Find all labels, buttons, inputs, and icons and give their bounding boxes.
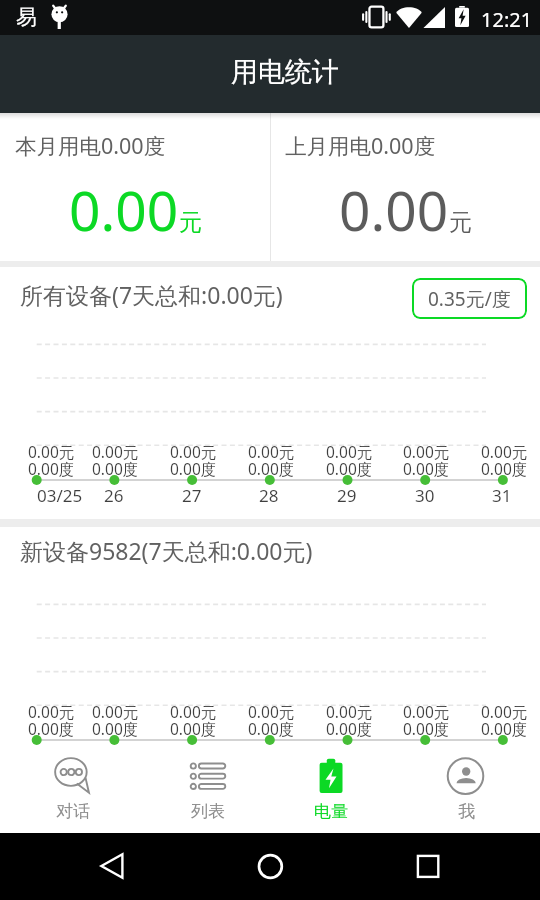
staticText: 29 — [337, 484, 357, 507]
staticText: 29 — [337, 744, 357, 767]
button[interactable]: Home — [246, 841, 294, 889]
button[interactable]: 电量 — [294, 745, 368, 833]
button[interactable]: 上月用电0.00度 — [270, 113, 540, 261]
staticText: 0.00元 0.00度 — [28, 441, 75, 480]
staticText: 31 — [492, 744, 512, 767]
staticText: 0.00 — [69, 172, 179, 247]
staticText: 易 — [16, 4, 37, 30]
staticText: 28 — [259, 484, 279, 507]
staticText: 31 — [492, 484, 512, 507]
staticText: 0.00元 0.00度 — [92, 441, 139, 480]
button[interactable]: Recents — [404, 841, 452, 889]
button[interactable]: Back — [88, 841, 136, 889]
staticText: 26 — [104, 484, 124, 507]
staticText: 0.00元 0.00度 — [326, 441, 373, 480]
staticText: 本月用电0.00度 — [15, 131, 166, 160]
staticText: 0.00元 0.00度 — [248, 701, 295, 740]
button[interactable]: 对话 — [36, 745, 110, 833]
staticText: 26 — [104, 744, 124, 767]
staticText: 0.00元 0.00度 — [326, 701, 373, 740]
staticText: 0.00元 0.00度 — [170, 441, 217, 480]
staticText: 0.00元 0.00度 — [92, 701, 139, 740]
staticText: 0.00元 0.00度 — [403, 441, 450, 480]
staticText: 上月用电0.00度 — [285, 131, 436, 160]
staticText: 27 — [182, 484, 202, 507]
staticText: 我 — [458, 801, 475, 822]
staticText: 0.00元 0.00度 — [248, 441, 295, 480]
staticText: 用电统计 — [231, 55, 339, 89]
staticText: 0.00元 0.00度 — [481, 441, 528, 480]
button[interactable]: 0.35元/度 — [412, 278, 527, 319]
staticText: 0.00元 0.00度 — [170, 701, 217, 740]
button[interactable]: 本月用电0.00度 — [0, 113, 270, 261]
staticText: 元 — [449, 208, 472, 237]
staticText: 新设备9582(7天总和:0.00元) — [20, 535, 313, 566]
staticText: 0.00 — [339, 172, 449, 247]
staticText: 0.00元 0.00度 — [481, 701, 528, 740]
staticText: 0.00元 0.00度 — [28, 701, 75, 740]
staticText: 0.35元/度 — [428, 286, 511, 312]
staticText: 30 — [415, 744, 435, 767]
staticText: 列表 — [191, 801, 225, 822]
staticText: 所有设备(7天总和:0.00元) — [20, 279, 283, 310]
staticText: 30 — [415, 484, 435, 507]
staticText: 0.00元 0.00度 — [403, 701, 450, 740]
staticText: 12:21 — [481, 6, 533, 33]
staticText: 28 — [259, 744, 279, 767]
staticText: 对话 — [56, 801, 90, 822]
staticText: 27 — [182, 744, 202, 767]
button[interactable]: 我 — [429, 745, 503, 833]
staticText: 元 — [179, 208, 202, 237]
staticText: 03/25 — [37, 484, 83, 507]
staticText: 电量 — [314, 801, 348, 822]
button[interactable]: 列表 — [171, 745, 245, 833]
staticText: 03/25 — [37, 744, 83, 767]
